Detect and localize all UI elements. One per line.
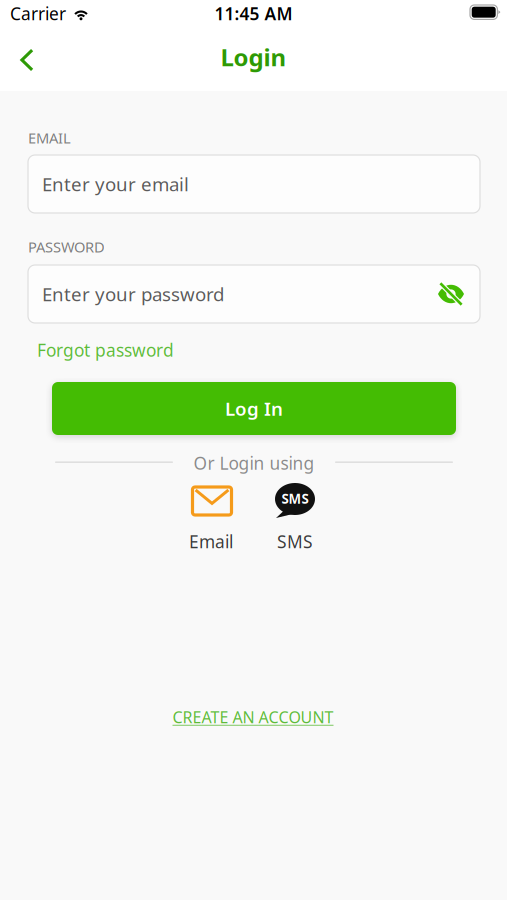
staticText: EMAIL <box>28 128 71 147</box>
staticText: Carrier <box>10 2 66 25</box>
staticText: Forgot password <box>37 338 174 361</box>
staticText: SMS <box>281 490 308 507</box>
staticText: Enter your password <box>42 282 224 306</box>
staticText: Login <box>220 41 286 73</box>
button[interactable]: Show password <box>431 274 471 314</box>
button[interactable]: Log In <box>52 382 456 435</box>
button[interactable]: SMS <box>260 483 330 553</box>
staticText: PASSWORD <box>28 237 105 256</box>
staticText: SMS <box>277 530 313 553</box>
button[interactable]: Email <box>176 483 246 553</box>
staticText: Email <box>189 530 233 553</box>
button[interactable]: Back <box>3 36 51 84</box>
staticText: CREATE AN ACCOUNT <box>172 706 333 728</box>
button[interactable]: Forgot password <box>37 337 177 363</box>
staticText: 11:45 AM <box>214 2 292 25</box>
staticText: Log In <box>225 396 283 421</box>
button[interactable]: CREATE AN ACCOUNT <box>153 704 353 730</box>
staticText: Enter your email <box>42 172 189 196</box>
staticText: Or Login using <box>193 451 314 474</box>
